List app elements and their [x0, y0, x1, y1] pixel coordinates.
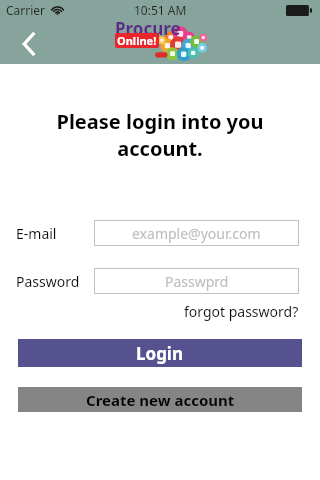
staticText: Login [136, 342, 184, 365]
staticText: Online! [117, 33, 157, 48]
button[interactable]: forgot password? [184, 302, 299, 321]
button[interactable]: example@your.com [94, 220, 299, 246]
staticText: Please login into you account. [14, 108, 306, 162]
button[interactable]: Login [18, 339, 302, 367]
button[interactable]: Create new account [18, 387, 302, 412]
staticText: E-mail [16, 224, 57, 243]
staticText: 10:51 AM [134, 2, 187, 18]
staticText: Passwprd [165, 272, 229, 291]
staticText: forgot password? [184, 302, 299, 321]
staticText: Password [16, 272, 80, 291]
staticText: example@your.com [132, 224, 261, 243]
staticText: Carrier [6, 2, 46, 18]
staticText: Procure [115, 17, 181, 40]
staticText: Create new account [86, 390, 235, 410]
button[interactable]: Back [8, 24, 48, 64]
button[interactable]: Passwprd [94, 268, 299, 294]
